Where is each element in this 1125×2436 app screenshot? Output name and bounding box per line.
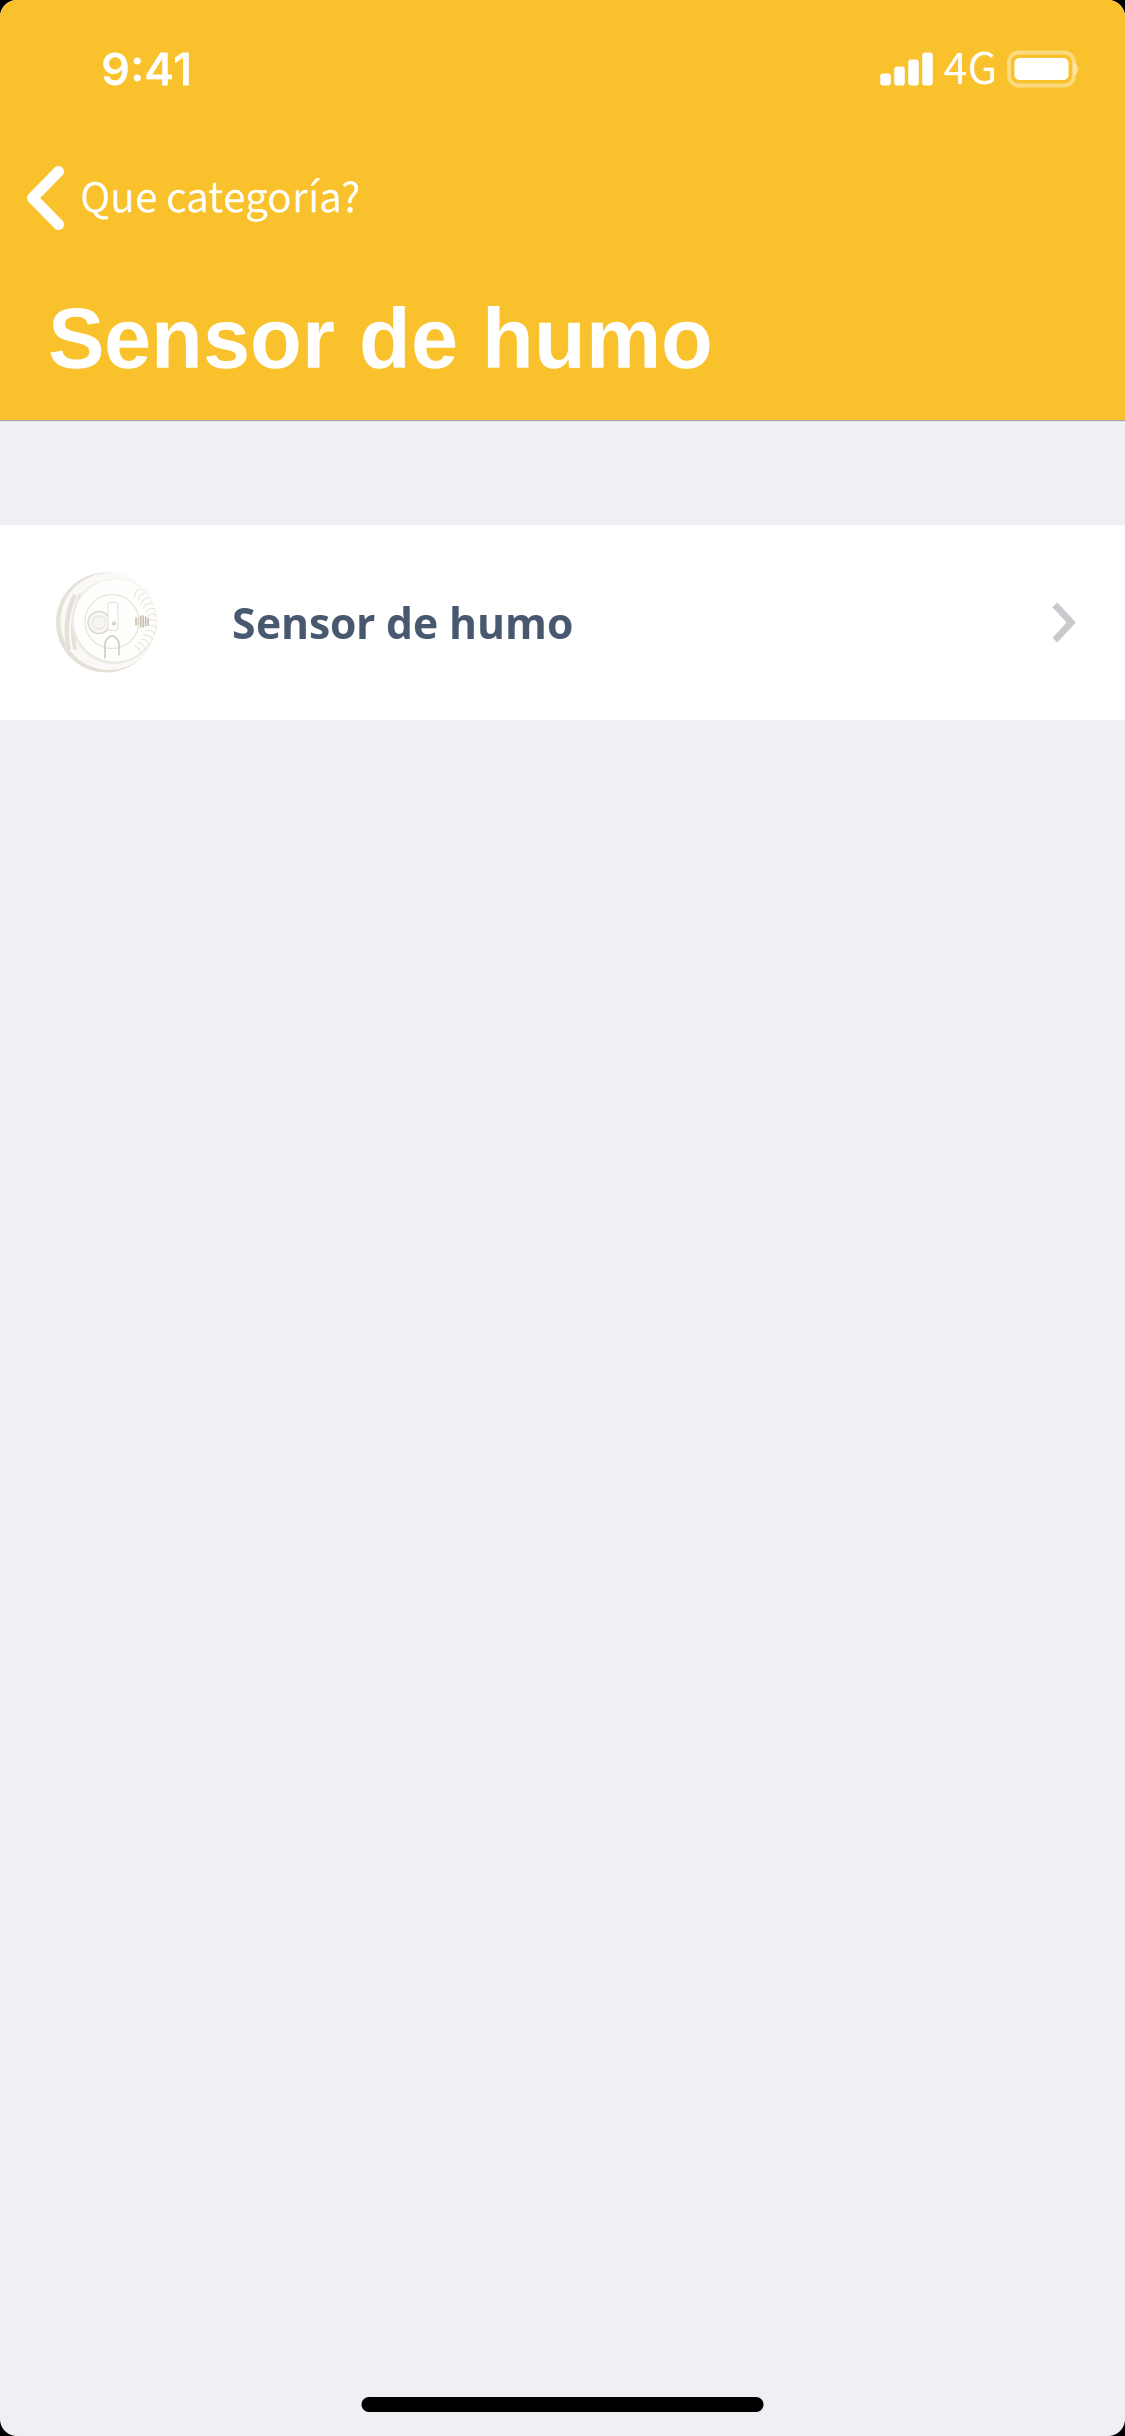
staticText: 4G: [943, 35, 997, 103]
button[interactable]: Sensor de humo: [0, 525, 1125, 720]
button[interactable]: Que categoría?: [0, 166, 1125, 230]
staticText: Que categoría?: [80, 166, 360, 230]
staticText: 9:41: [101, 42, 192, 96]
staticText: Sensor de humo: [48, 291, 713, 386]
staticText: Sensor de humo: [232, 593, 573, 651]
